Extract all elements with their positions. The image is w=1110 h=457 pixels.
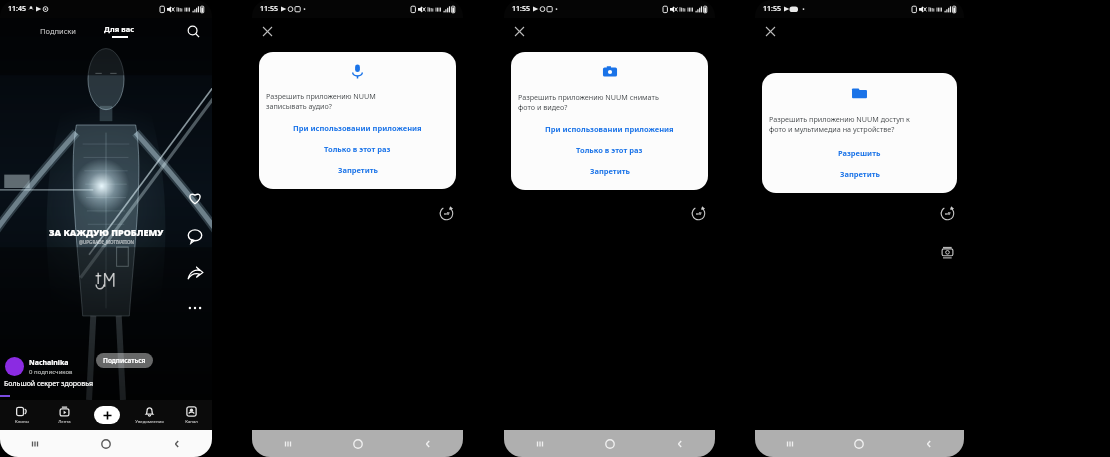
staticText: 11:55 — [512, 4, 530, 14]
button[interactable]: Только в этот раз — [511, 143, 708, 157]
staticText: Разрешить — [838, 148, 881, 158]
button[interactable]: Подписки — [36, 23, 80, 39]
staticText: Только в этот раз — [576, 145, 643, 155]
button[interactable]: Запретить — [259, 163, 456, 177]
button[interactable]: Главный экран — [323, 430, 393, 457]
button[interactable]: Закрыть — [760, 21, 780, 41]
staticText: Только в этот раз — [324, 144, 391, 154]
staticText: Канал — [185, 419, 198, 425]
button[interactable]: Вспышка выключена — [938, 165, 957, 184]
button[interactable]: Назад — [645, 430, 715, 457]
staticText: 0 подписчиков — [29, 368, 73, 376]
button[interactable]: Канал — [170, 400, 212, 430]
button[interactable]: Назад — [141, 430, 212, 457]
button[interactable]: Вспышка выключена — [689, 165, 708, 184]
button[interactable]: Вспышка выключена — [437, 165, 456, 184]
staticText: Для вас — [104, 24, 135, 34]
button[interactable]: При использовании приложения — [511, 122, 708, 136]
button[interactable]: Главный экран — [824, 430, 894, 457]
staticText: Клипы — [15, 419, 29, 425]
staticText: 11:45 — [8, 4, 26, 14]
button[interactable]: Подписаться — [96, 353, 153, 368]
staticText: Nachalnika — [29, 358, 69, 368]
button[interactable]: Запретить — [511, 164, 708, 178]
staticText: 11:55 — [260, 4, 278, 14]
button[interactable]: Последние приложения — [504, 430, 575, 457]
button[interactable]: Таймер выключен — [938, 204, 957, 223]
staticText: Запретить — [590, 166, 630, 176]
button[interactable]: Главный экран — [575, 430, 645, 457]
staticText: 11:55 — [763, 4, 781, 14]
button[interactable]: Ещё — [183, 296, 207, 320]
staticText: Разрешить приложению NUUM записывать ауд… — [266, 91, 376, 111]
button[interactable]: Сменить камеру — [938, 243, 957, 262]
button[interactable]: Таймер выключен — [437, 204, 456, 223]
button[interactable]: Запретить — [762, 167, 957, 181]
button[interactable]: Поделиться — [183, 262, 207, 286]
button[interactable]: Закрыть — [509, 21, 529, 41]
button[interactable]: Закрыть — [257, 21, 277, 41]
staticText: Большой секрет здоровья — [4, 379, 93, 389]
button[interactable]: Только в этот раз — [259, 142, 456, 156]
button[interactable]: Таймер выключен — [689, 204, 708, 223]
staticText: Подписаться — [103, 356, 146, 365]
button[interactable]: Последние приложения — [755, 430, 824, 457]
button[interactable]: Назад — [393, 430, 463, 457]
staticText: Разрешить приложению NUUM снимать фото и… — [518, 92, 659, 112]
button[interactable]: Назад — [894, 430, 964, 457]
button[interactable]: Последние приложения — [0, 430, 70, 457]
staticText: off — [444, 211, 450, 217]
button[interactable]: Нравится — [183, 186, 207, 210]
button[interactable]: Разрешить — [762, 146, 957, 160]
staticText: Подписки — [40, 26, 76, 36]
staticText: При использовании приложения — [545, 124, 674, 134]
button[interactable]: Главный экран — [70, 430, 141, 457]
button[interactable]: Лента — [43, 400, 86, 430]
button[interactable]: Nachalnika — [5, 357, 73, 376]
staticText: Запретить — [840, 169, 880, 179]
button[interactable]: Комментарии — [183, 224, 207, 248]
staticText: Разрешить приложению NUUM доступ к фото … — [769, 114, 910, 134]
staticText: Лента — [58, 419, 71, 425]
staticText: off — [945, 211, 951, 217]
button[interactable]: Уведомления — [128, 400, 170, 430]
button[interactable]: Поиск — [182, 20, 204, 42]
staticText: ЗА КАЖДУЮ ПРОБЛЕМУ — [49, 226, 164, 238]
staticText: @UPGRADE_MOTIVATION — [79, 239, 134, 245]
button[interactable]: При использовании приложения — [259, 121, 456, 135]
staticText: off — [696, 211, 702, 217]
button[interactable]: Последние приложения — [252, 430, 323, 457]
button[interactable]: Создать — [94, 406, 120, 424]
button[interactable]: Для вас — [100, 22, 139, 40]
staticText: При использовании приложения — [293, 123, 422, 133]
staticText: Запретить — [338, 165, 378, 175]
staticText: Уведомления — [135, 419, 164, 425]
button[interactable]: Клипы — [0, 400, 43, 430]
